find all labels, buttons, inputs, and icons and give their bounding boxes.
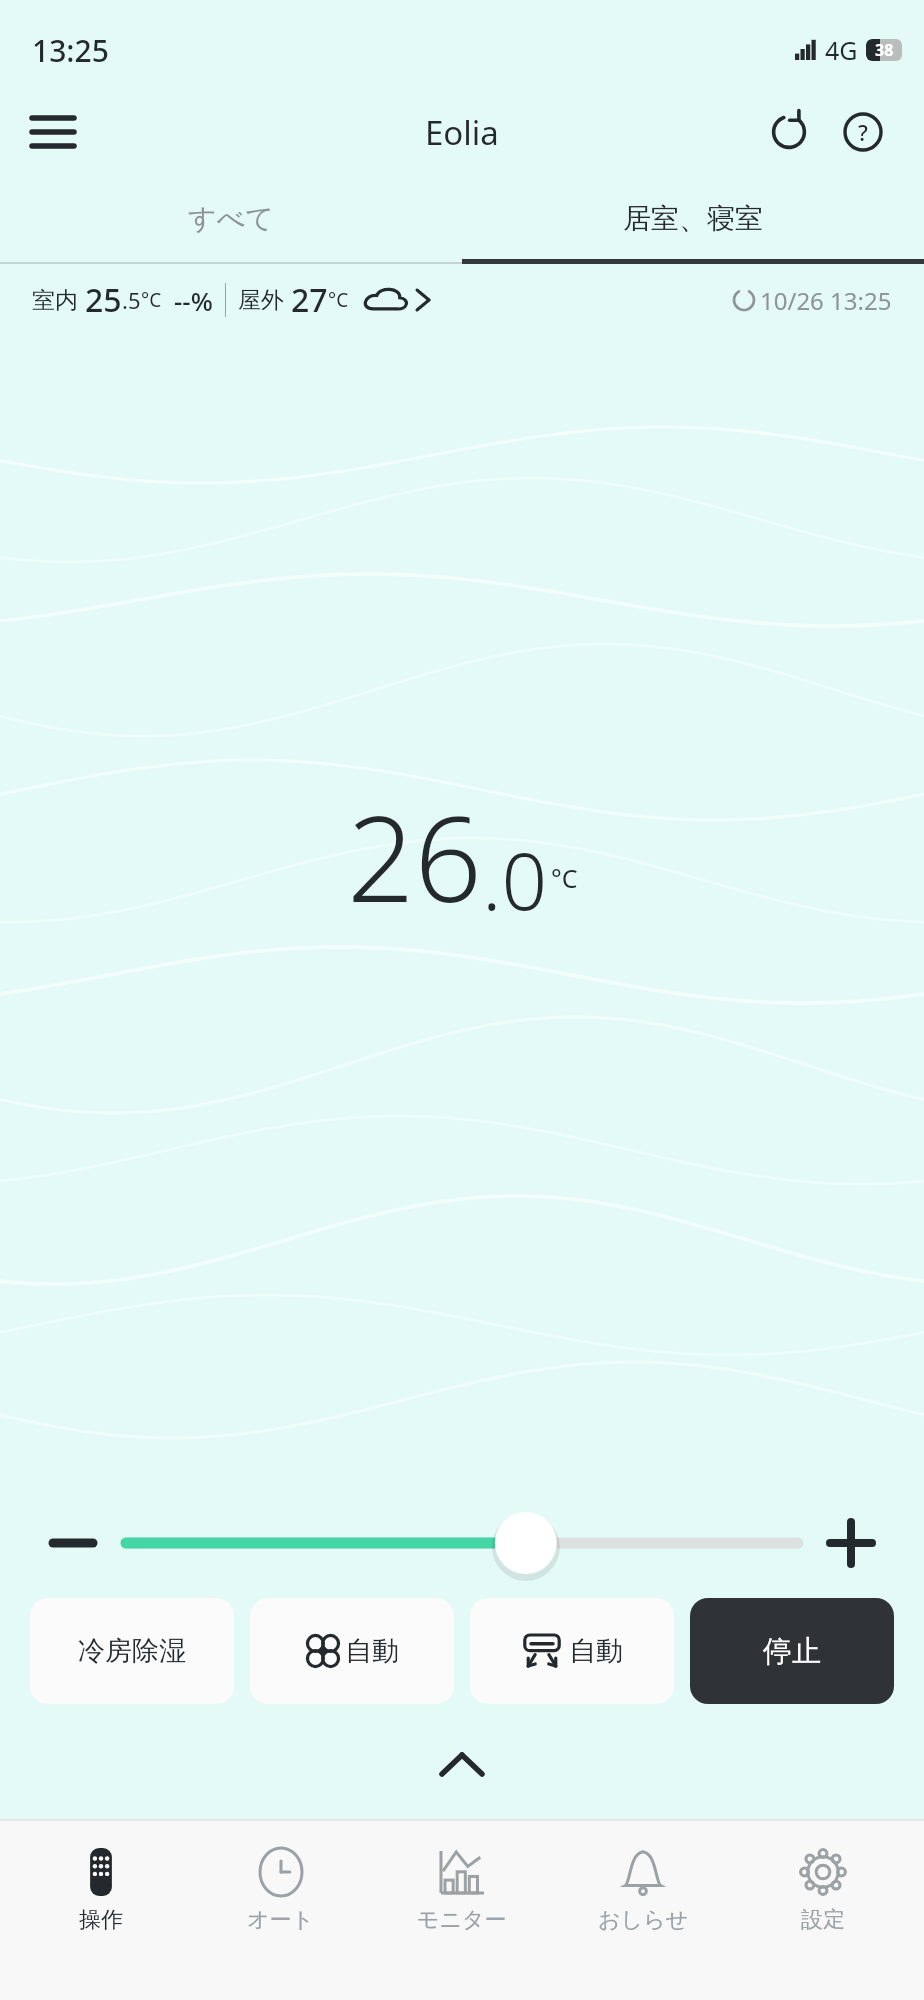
staticText: 38 (875, 39, 894, 61)
staticText: 自動 (569, 1634, 623, 1668)
staticText: °C (551, 861, 578, 895)
staticText: °C (141, 287, 162, 313)
button[interactable]: 室内 (32, 264, 892, 336)
button[interactable]: オート (201, 1842, 361, 1938)
staticText: 13:25 (32, 30, 109, 71)
button[interactable]: Temperature slider (126, 1508, 798, 1578)
staticText: °C (328, 287, 349, 313)
button[interactable]: 冷房除湿 (30, 1598, 234, 1704)
button[interactable]: 自動 (470, 1598, 674, 1704)
staticText: ? (858, 117, 868, 147)
staticText: --% (174, 283, 213, 318)
button[interactable]: 操作 (21, 1842, 181, 1938)
staticText: 設定 (801, 1906, 845, 1934)
staticText: .5 (122, 285, 141, 315)
staticText: すべて (188, 201, 274, 236)
staticText: 冷房除湿 (78, 1634, 186, 1668)
staticText: Eolia (425, 110, 499, 155)
staticText: おしらせ (598, 1906, 689, 1934)
staticText: モニター (417, 1906, 507, 1934)
staticText: 4G (825, 33, 858, 67)
button[interactable]: 停止 (690, 1598, 894, 1704)
button[interactable]: モニター (382, 1842, 542, 1938)
staticText: 居室、寝室 (623, 201, 763, 236)
button[interactable]: Help (832, 101, 894, 163)
button[interactable]: 居室、寝室 (462, 172, 924, 264)
button[interactable]: Increase temperature (816, 1508, 886, 1578)
staticText: 屋外 (238, 286, 284, 315)
button[interactable]: 自動 (250, 1598, 454, 1704)
staticText: オート (247, 1906, 315, 1934)
staticText: 自動 (345, 1634, 399, 1668)
button[interactable]: おしらせ (563, 1842, 723, 1938)
button[interactable]: 設定 (743, 1842, 903, 1938)
staticText: 26 (347, 776, 482, 937)
staticText: 27 (291, 278, 328, 322)
button[interactable]: すべて (0, 172, 462, 264)
staticText: 操作 (79, 1906, 123, 1934)
staticText: 10/26 13:25 (760, 284, 892, 317)
button[interactable]: Decrease temperature (38, 1508, 108, 1578)
staticText: 停止 (763, 1633, 821, 1670)
staticText: 室内 (32, 286, 78, 315)
button[interactable]: Menu (24, 103, 82, 161)
staticText: 25 (85, 278, 122, 322)
staticText: .0 (482, 824, 548, 933)
button[interactable]: Expand (422, 1736, 502, 1792)
button[interactable]: Refresh (758, 101, 820, 163)
